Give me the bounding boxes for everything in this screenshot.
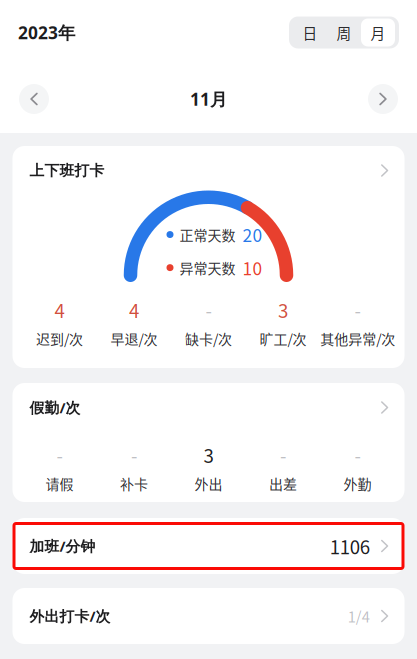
staticText: 外勤 <box>343 473 371 494</box>
staticText: - <box>131 441 137 468</box>
staticText: 外出打卡/次 <box>29 606 110 626</box>
staticText: 异常天数 <box>179 257 235 278</box>
staticText: - <box>56 441 62 468</box>
staticText: 出差 <box>269 473 297 494</box>
button[interactable]: 日 <box>293 18 327 46</box>
button[interactable]: 上下班打卡 <box>12 150 404 191</box>
button[interactable]: 上个月 <box>19 84 49 114</box>
staticText: 1/4 <box>348 605 370 627</box>
staticText: 迟到/次 <box>36 328 83 349</box>
staticText: 1106 <box>330 532 370 559</box>
staticText: 请假 <box>45 473 73 494</box>
staticText: 其他异常/次 <box>320 328 395 349</box>
staticText: 10 <box>242 255 262 280</box>
staticText: 旷工/次 <box>259 328 306 349</box>
staticText: 外出 <box>194 473 222 494</box>
staticText: - <box>354 296 360 323</box>
staticText: - <box>205 296 211 323</box>
staticText: 2023年 <box>18 21 75 44</box>
staticText: 周 <box>336 22 351 43</box>
staticText: 20 <box>242 222 262 247</box>
staticText: 3 <box>203 441 213 468</box>
staticText: 补卡 <box>120 473 148 494</box>
button[interactable]: 外出打卡/次 <box>12 588 404 644</box>
staticText: 3 <box>278 296 288 323</box>
staticText: 11月 <box>190 87 227 111</box>
staticText: 假勤/次 <box>29 397 80 417</box>
button[interactable]: 月 <box>361 18 395 46</box>
staticText: 月 <box>370 22 385 43</box>
staticText: - <box>280 441 286 468</box>
staticText: 4 <box>54 296 64 323</box>
staticText: 缺卡/次 <box>185 328 232 349</box>
staticText: 正常天数 <box>179 224 235 245</box>
button[interactable]: 下个月 <box>368 84 398 114</box>
button[interactable]: 假勤/次 <box>12 387 404 428</box>
button[interactable]: 周 <box>327 18 361 46</box>
staticText: 上下班打卡 <box>29 161 104 180</box>
button[interactable]: 加班/分钟 <box>12 518 404 574</box>
staticText: 早退/次 <box>110 328 157 349</box>
staticText: 日 <box>302 22 317 43</box>
staticText: 4 <box>129 296 139 323</box>
staticText: - <box>354 441 360 468</box>
staticText: 加班/分钟 <box>29 536 95 556</box>
